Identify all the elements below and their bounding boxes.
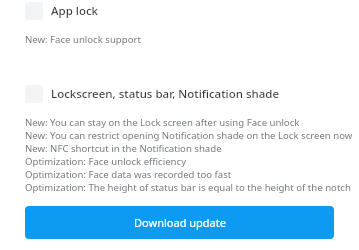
staticText: Lockscreen, status bar, Notification sha… (51, 86, 280, 102)
button[interactable]: App lock section icon (0, 0, 359, 22)
button[interactable]: Lockscreen section icon (0, 83, 359, 105)
staticText: Optimization: The height of status bar i… (25, 181, 351, 194)
staticText: New: You can restrict opening Notificati… (25, 129, 353, 142)
staticText: New: Face unlock support (25, 33, 141, 46)
staticText: Download update (134, 215, 226, 230)
staticText: App lock (51, 3, 98, 19)
staticText: New: NFC shortcut in the Notification sh… (25, 142, 222, 155)
button[interactable]: Download update (25, 206, 334, 239)
staticText: Optimization: Face data was recorded too… (25, 168, 232, 181)
staticText: New: You can stay on the Lock screen aft… (25, 116, 300, 129)
staticText: Optimization: Face unlock efficiency (25, 155, 187, 168)
